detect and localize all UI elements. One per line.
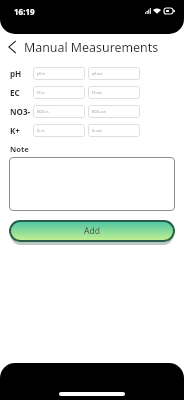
- staticText: Manual Measurements: [24, 39, 159, 56]
- button[interactable]: K+ in: [33, 124, 85, 137]
- button[interactable]: pH in: [33, 67, 85, 80]
- staticText: 16:19: [14, 6, 35, 17]
- button[interactable]: Back: [0, 35, 24, 59]
- staticText: Add: [84, 225, 100, 237]
- staticText: NO3- in: [37, 110, 49, 114]
- staticText: K+: [10, 125, 21, 136]
- staticText: K+ out: [92, 129, 102, 133]
- button[interactable]: EC out: [88, 86, 140, 99]
- staticText: Note: [10, 144, 29, 154]
- staticText: K+ in: [37, 129, 45, 133]
- staticText: EC: [10, 87, 20, 98]
- button[interactable]: Add: [9, 220, 175, 245]
- button[interactable]: NO3- in: [33, 105, 85, 118]
- button[interactable]: NO3- out: [88, 105, 140, 118]
- button[interactable]: EC in: [33, 86, 85, 99]
- staticText: pH: [10, 68, 22, 79]
- staticText: EC in: [37, 91, 45, 95]
- staticText: pH in: [37, 72, 45, 76]
- staticText: EC out: [92, 91, 102, 95]
- staticText: NO3- out: [92, 110, 106, 114]
- button[interactable]: [9, 157, 175, 211]
- button[interactable]: K+ out: [88, 124, 140, 137]
- staticText: NO3-: [10, 106, 31, 117]
- staticText: pH out: [92, 72, 103, 76]
- button[interactable]: pH out: [88, 67, 140, 80]
